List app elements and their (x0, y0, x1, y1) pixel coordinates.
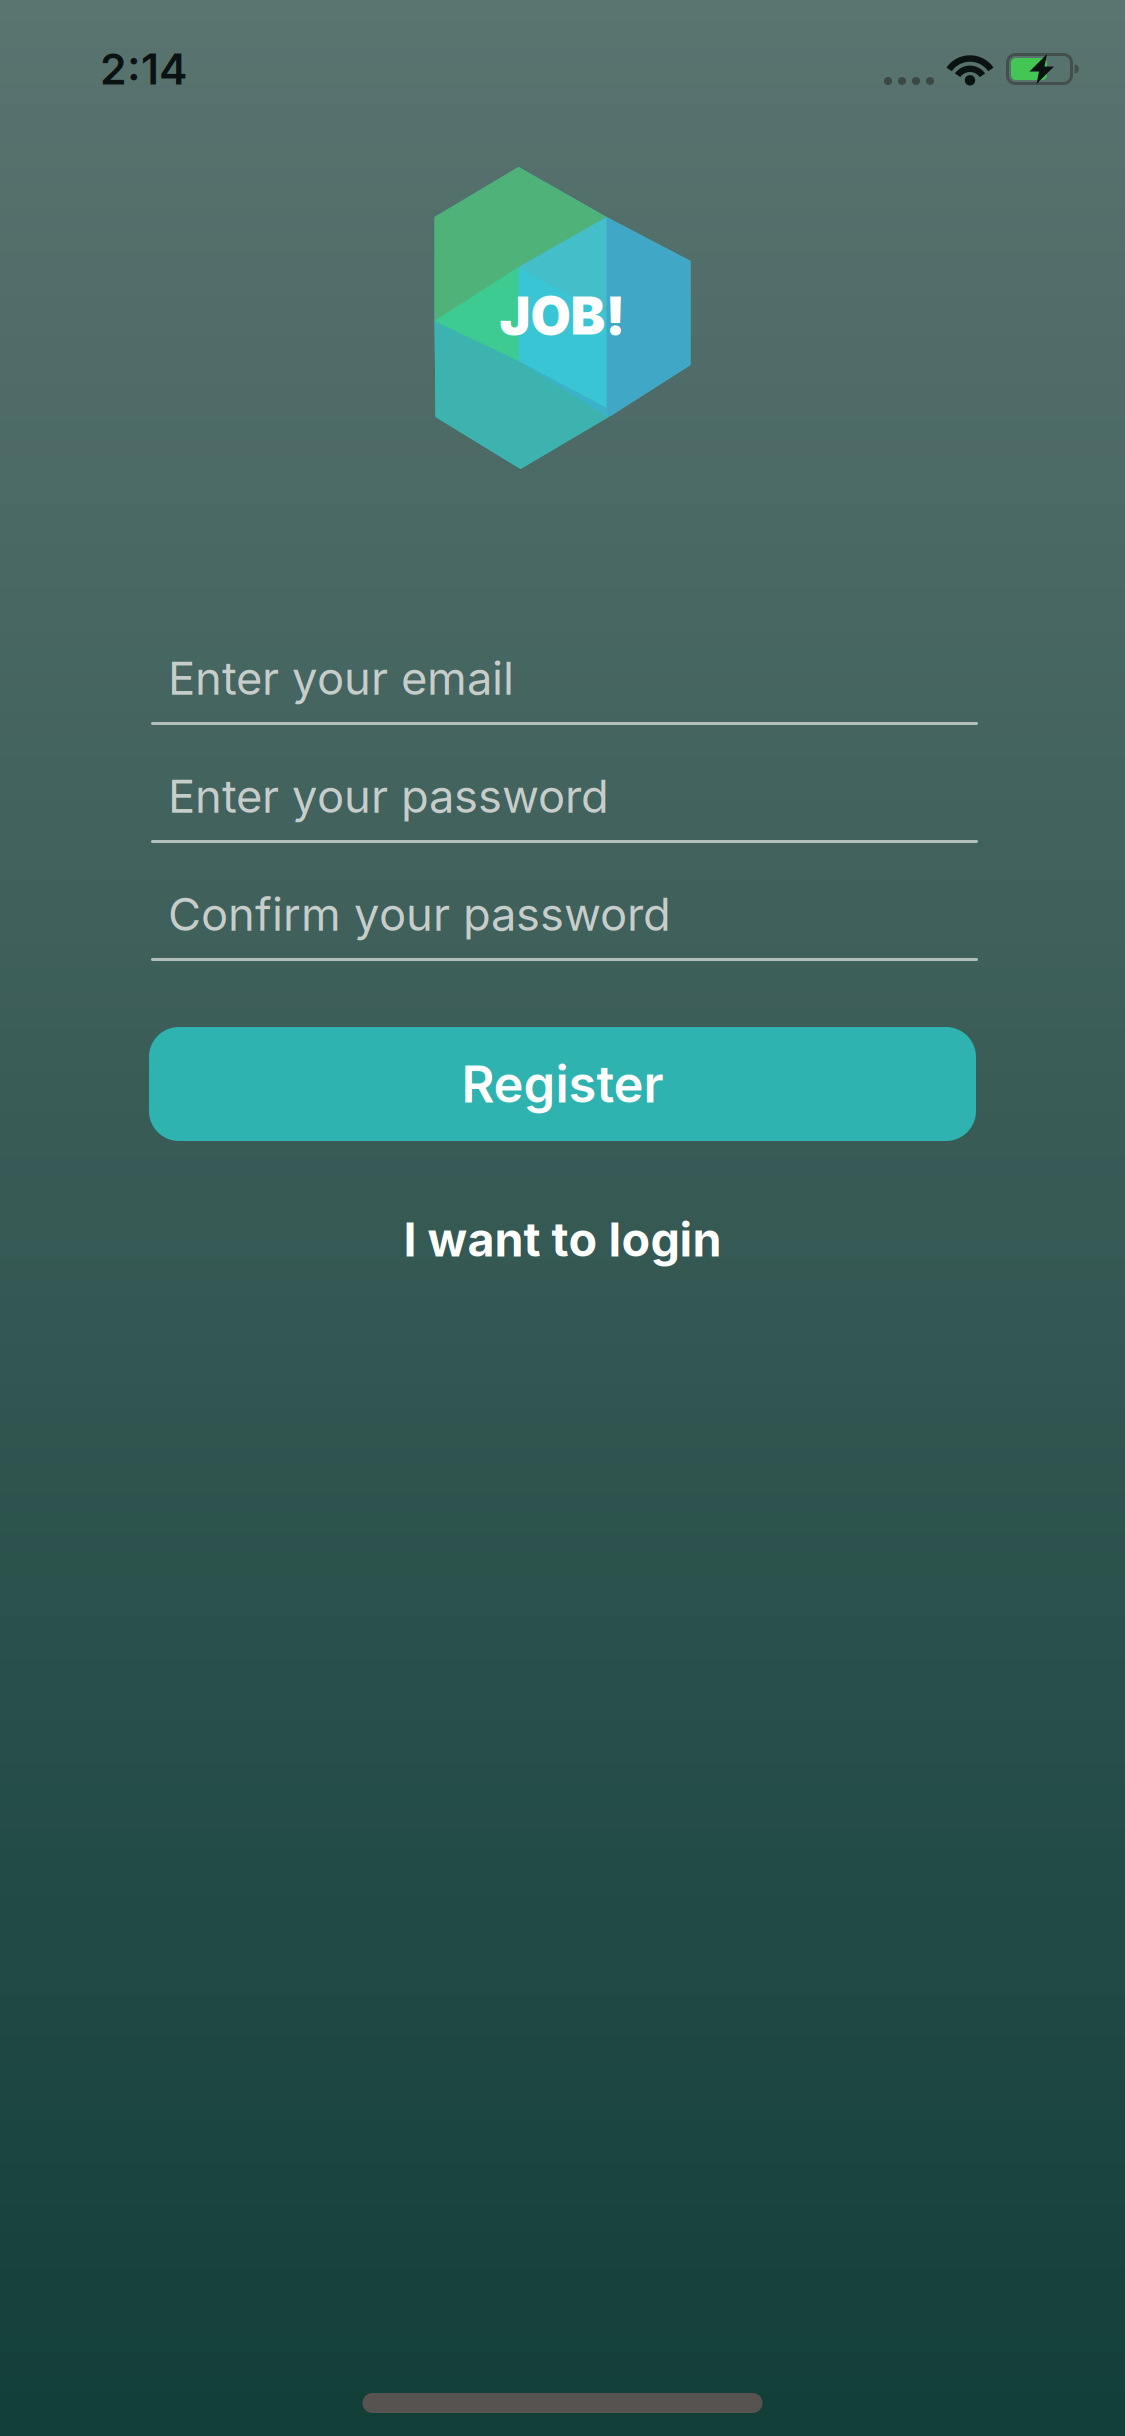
button[interactable]: Enter your password (151, 725, 978, 843)
staticText: 2:14 (100, 44, 187, 94)
staticText: JOB! (499, 285, 625, 346)
button[interactable]: Enter your email (151, 607, 978, 725)
staticText: I want to login (403, 1212, 721, 1267)
button[interactable]: I want to login (403, 1212, 721, 1267)
staticText: Enter your password (168, 769, 609, 823)
button[interactable]: Home (362, 2393, 762, 2413)
staticText: Register (461, 1054, 663, 1114)
staticText: Enter your email (168, 651, 514, 705)
staticText: Confirm your password (168, 887, 671, 941)
button[interactable]: Register (149, 1027, 976, 1141)
button[interactable]: Confirm your password (151, 843, 978, 961)
